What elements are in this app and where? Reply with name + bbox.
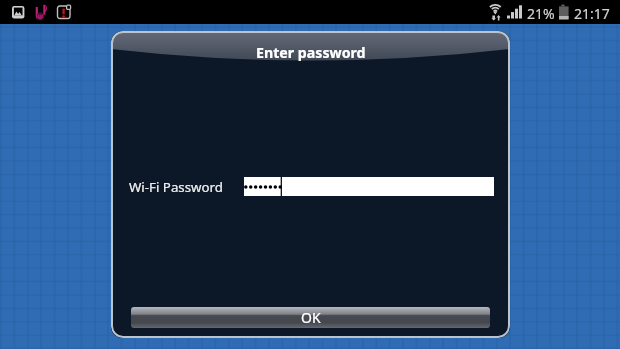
staticText: Enter password: [256, 43, 366, 62]
staticText: Wi-Fi Password: [129, 178, 224, 196]
button[interactable]: Status bar, open notification shade: [0, 0, 620, 24]
staticText: OK: [301, 308, 321, 327]
button[interactable]: Wi-Fi password input: [244, 177, 494, 196]
staticText: 21%: [527, 4, 555, 23]
button[interactable]: OK: [131, 307, 490, 328]
staticText: 21:17: [574, 4, 610, 23]
